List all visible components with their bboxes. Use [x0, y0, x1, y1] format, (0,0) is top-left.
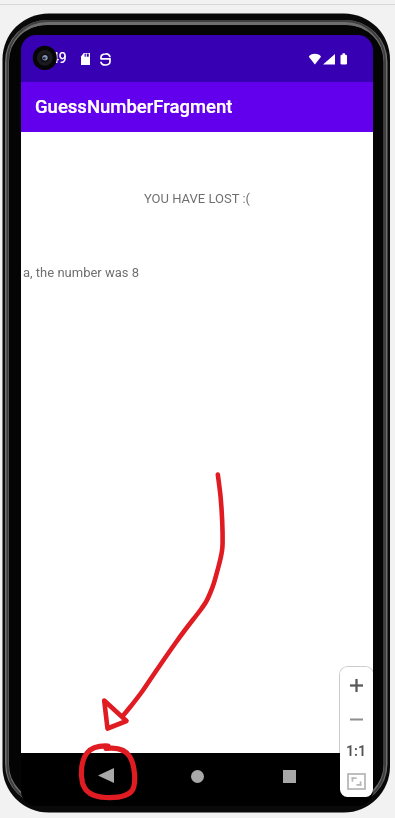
button[interactable]: Home — [175, 758, 219, 802]
staticText: a, the number was 8 — [23, 265, 140, 280]
staticText: 49 — [51, 50, 67, 66]
staticText: GuessNumberFragment — [35, 96, 233, 118]
button[interactable]: Back — [84, 753, 130, 806]
staticText: YOU HAVE LOST :( — [21, 191, 373, 206]
button[interactable]: Recent apps — [267, 758, 311, 802]
button[interactable]: Actual size — [340, 735, 373, 766]
button[interactable]: Zoom in — [340, 667, 373, 704]
staticText: 1:1 — [346, 743, 367, 759]
button[interactable]: Fit to screen — [340, 766, 373, 797]
button[interactable]: Zoom out — [340, 704, 373, 735]
